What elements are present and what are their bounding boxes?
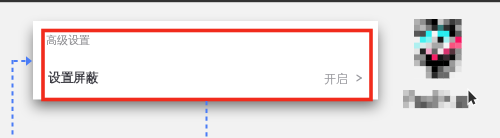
staticText: 设置屏蔽 (48, 70, 98, 86)
staticText: 高级设置 (46, 33, 90, 47)
staticText: 开启 (324, 71, 348, 86)
button[interactable]: 设置屏蔽 (33, 61, 378, 95)
